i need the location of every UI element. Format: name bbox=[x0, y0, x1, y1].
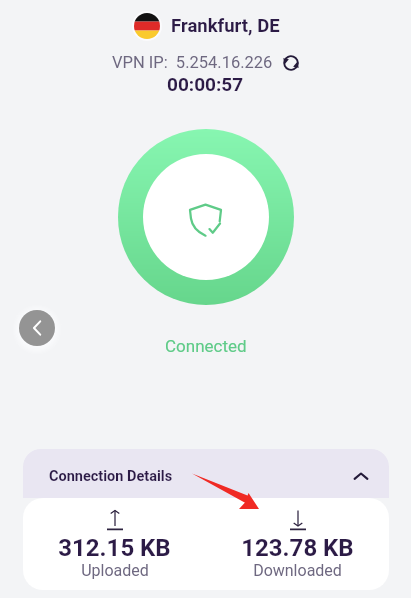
button[interactable]: Refresh IP bbox=[282, 54, 300, 72]
staticText: VPN IP: 5.254.16.226 bbox=[112, 53, 273, 72]
button[interactable]: Back bbox=[19, 310, 55, 346]
button[interactable]: Connection Details bbox=[23, 449, 389, 498]
staticText: 312.15 KB bbox=[58, 534, 171, 562]
staticText: 00:00:57 bbox=[167, 73, 244, 95]
staticText: 123.78 KB bbox=[241, 534, 354, 562]
staticText: Downloaded bbox=[253, 561, 342, 580]
staticText: Frankfurt, DE bbox=[171, 15, 280, 37]
staticText: Uploaded bbox=[81, 561, 149, 580]
staticText: Connection Details bbox=[49, 468, 173, 485]
staticText: Connected bbox=[165, 336, 247, 356]
button[interactable]: Disconnect VPN bbox=[118, 129, 294, 305]
